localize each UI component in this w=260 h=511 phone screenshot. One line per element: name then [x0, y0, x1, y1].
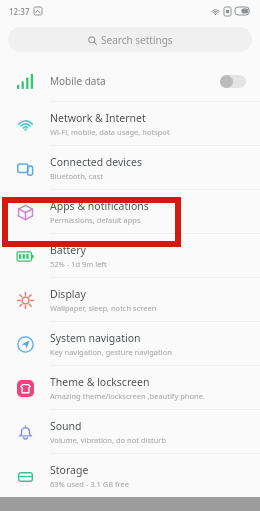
button[interactable]: System navigation — [0, 322, 260, 366]
button[interactable]: Network & Internet — [0, 102, 260, 146]
button[interactable]: Display — [0, 278, 260, 322]
staticText: Bluetooth, cast — [50, 171, 103, 181]
staticText: Sound — [50, 419, 82, 433]
staticText: Key navigation, gesture navigation — [50, 347, 172, 357]
button[interactable]: Mobile data — [0, 60, 260, 102]
staticText: Permissions, default apps — [50, 215, 141, 225]
staticText: Display — [50, 287, 86, 301]
staticText: System navigation — [50, 331, 141, 345]
staticText: 52% - 1d 9m left — [50, 259, 107, 269]
staticText: Theme & lockscreen — [50, 375, 150, 389]
button[interactable]: Battery — [0, 234, 260, 278]
staticText: Search settings — [101, 33, 173, 47]
staticText: Network & Internet — [50, 111, 146, 125]
staticText: Connected devices — [50, 155, 143, 169]
staticText: Amazing theme/lockscreen ,beautify phone… — [50, 391, 205, 401]
staticText: Battery — [50, 243, 86, 257]
button[interactable]: Mobile data toggle — [220, 75, 246, 88]
staticText: Wi-Fi, mobile, data usage, hotspot — [50, 127, 170, 137]
staticText: Apps & notifications — [50, 199, 149, 213]
button[interactable]: Search settings — [8, 27, 252, 52]
button[interactable]: Apps & notifications — [0, 190, 260, 234]
button[interactable]: Sound — [0, 410, 260, 454]
staticText: 63% used - 3.1 GB free — [50, 479, 129, 489]
staticText: Mobile data — [50, 74, 106, 88]
button[interactable]: Connected devices — [0, 146, 260, 190]
staticText: Volume, vibration, do not disturb — [50, 435, 167, 445]
staticText: Wallpaper, sleep, notch screen — [50, 303, 157, 313]
button[interactable]: Storage — [0, 454, 260, 498]
staticText: Storage — [50, 463, 89, 477]
staticText: 12:37 — [9, 6, 30, 17]
button[interactable]: Theme & lockscreen — [0, 366, 260, 410]
